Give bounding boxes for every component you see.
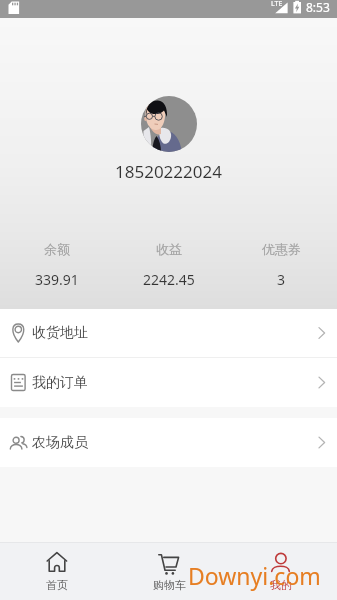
other: 购物车 [157,550,181,574]
button[interactable]: 收益 [113,241,225,289]
button[interactable]: 我的订单 [0,358,337,407]
staticText: 339.91 [35,270,79,289]
button[interactable]: 优惠券 [225,241,337,289]
button[interactable]: 我的 [225,543,337,600]
button[interactable]: 余额 [0,241,113,289]
staticText: 购物车 [153,578,186,592]
staticText: 收益 [156,241,182,257]
staticText: 农场成员 [32,434,88,452]
button[interactable]: 购物车 [113,543,225,600]
button[interactable]: Profile photo [141,96,197,152]
other: 我的 [269,550,293,574]
button[interactable]: 首页 [0,543,113,600]
staticText: 我的 [270,578,292,592]
staticText: 优惠券 [262,241,301,257]
staticText: 我的订单 [32,374,88,392]
staticText: 18520222024 [115,160,222,183]
staticText: 首页 [46,578,68,592]
staticText: 余额 [44,241,70,257]
staticText: 2242.45 [143,270,195,289]
staticText: 8:53 [306,0,330,15]
other: 首页 [45,550,69,574]
button[interactable]: 农场成员 [0,418,337,467]
staticText: Downyi.com [188,560,321,591]
staticText: 3 [277,270,286,289]
button[interactable]: 收货地址 [0,309,337,357]
staticText: LTE [271,0,283,9]
staticText: 收货地址 [32,324,88,342]
